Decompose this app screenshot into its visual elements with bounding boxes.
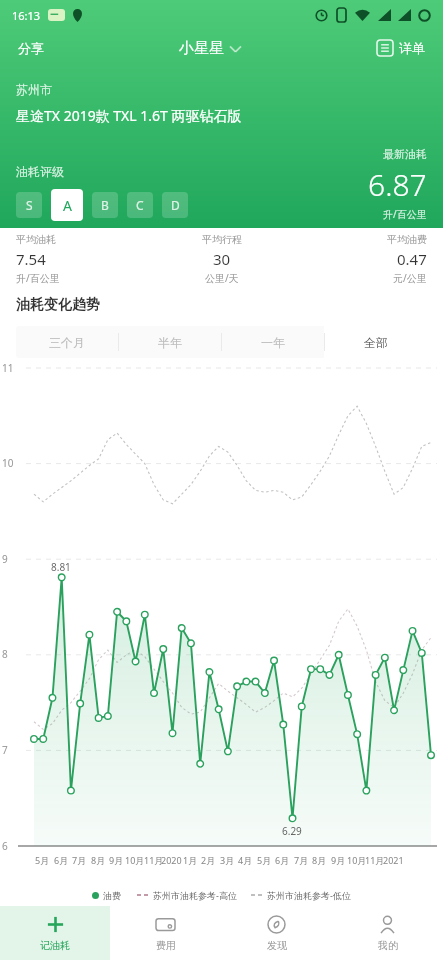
staticText: 5月: [35, 854, 50, 866]
staticText: 半年: [158, 335, 182, 350]
button[interactable]: 半年: [118, 326, 221, 358]
staticText: 三个月: [49, 335, 85, 350]
button[interactable]: 三个月: [16, 326, 118, 358]
staticText: 10月: [125, 854, 145, 866]
staticText: 30: [213, 249, 231, 269]
button[interactable]: 记油耗: [0, 906, 110, 960]
button[interactable]: S: [16, 192, 42, 218]
staticText: 分享: [18, 40, 44, 56]
staticText: 10: [2, 456, 14, 470]
staticText: 我的: [378, 939, 398, 952]
staticText: 一年: [261, 335, 285, 350]
staticText: 小星星: [179, 39, 224, 58]
staticText: 6.29: [282, 824, 302, 838]
staticText: 升/百公里: [383, 207, 427, 221]
staticText: 苏州市油耗参考-低位: [267, 889, 351, 901]
staticText: 8月: [312, 854, 327, 866]
staticText: 8: [2, 647, 8, 661]
staticText: 详单: [399, 40, 425, 56]
staticText: 7月: [72, 854, 87, 866]
button[interactable]: D: [162, 192, 188, 218]
staticText: 16:13: [12, 8, 41, 23]
button[interactable]: 我的: [332, 906, 443, 960]
staticText: 全部: [364, 335, 388, 350]
staticText: 元/公里: [393, 271, 427, 285]
staticText: 11: [2, 361, 14, 375]
staticText: 2月: [201, 854, 216, 866]
staticText: B: [101, 197, 109, 213]
staticText: 11月: [144, 854, 164, 866]
button[interactable]: C: [127, 192, 153, 218]
staticText: 8.81: [51, 560, 71, 574]
button[interactable]: B: [92, 192, 118, 218]
staticText: 记油耗: [40, 939, 70, 952]
staticText: 6月: [54, 854, 69, 866]
staticText: 平均油费: [387, 233, 427, 246]
staticText: 9月: [331, 854, 346, 866]
staticText: 2021: [383, 854, 404, 866]
staticText: 8月: [91, 854, 106, 866]
staticText: 7.54: [16, 249, 46, 269]
staticText: 费用: [156, 939, 176, 952]
staticText: D: [171, 197, 180, 213]
staticText: 油耗评级: [16, 164, 64, 179]
staticText: 9: [2, 552, 8, 566]
button[interactable]: A: [51, 189, 83, 221]
button[interactable]: 小星星: [173, 35, 247, 62]
staticText: 7: [2, 743, 8, 757]
staticText: 星途TX 2019款 TXL 1.6T 两驱钻石版: [16, 106, 242, 125]
staticText: 油费: [103, 890, 121, 901]
staticText: 7月: [294, 854, 309, 866]
staticText: 11月: [365, 854, 385, 866]
button[interactable]: 一年: [221, 326, 324, 358]
button[interactable]: 全部: [324, 326, 427, 358]
button[interactable]: 详单: [371, 36, 431, 60]
staticText: 发现: [267, 939, 287, 952]
staticText: 6: [2, 839, 8, 853]
staticText: 最新油耗: [383, 147, 427, 161]
staticText: 10月: [347, 854, 367, 866]
staticText: 1月: [183, 854, 198, 866]
button[interactable]: 发现: [221, 906, 332, 960]
staticText: 6.87: [368, 164, 427, 205]
staticText: 苏州市油耗参考-高位: [153, 889, 237, 901]
staticText: 平均油耗: [16, 233, 56, 246]
staticText: C: [136, 197, 144, 213]
staticText: 平均行程: [202, 233, 242, 246]
button[interactable]: 分享: [12, 36, 50, 60]
staticText: 3月: [220, 854, 235, 866]
staticText: 4月: [238, 854, 253, 866]
staticText: A: [63, 196, 72, 215]
staticText: 油耗变化趋势: [16, 296, 100, 314]
staticText: 苏州市: [16, 82, 52, 97]
staticText: 升/百公里: [16, 271, 60, 285]
button[interactable]: 费用: [110, 906, 221, 960]
staticText: 2020: [161, 854, 182, 866]
staticText: 0.47: [397, 249, 427, 269]
staticText: 9月: [109, 854, 124, 866]
staticText: 5月: [257, 854, 272, 866]
staticText: S: [26, 197, 33, 213]
staticText: 6月: [275, 854, 290, 866]
staticText: 公里/天: [205, 271, 239, 285]
